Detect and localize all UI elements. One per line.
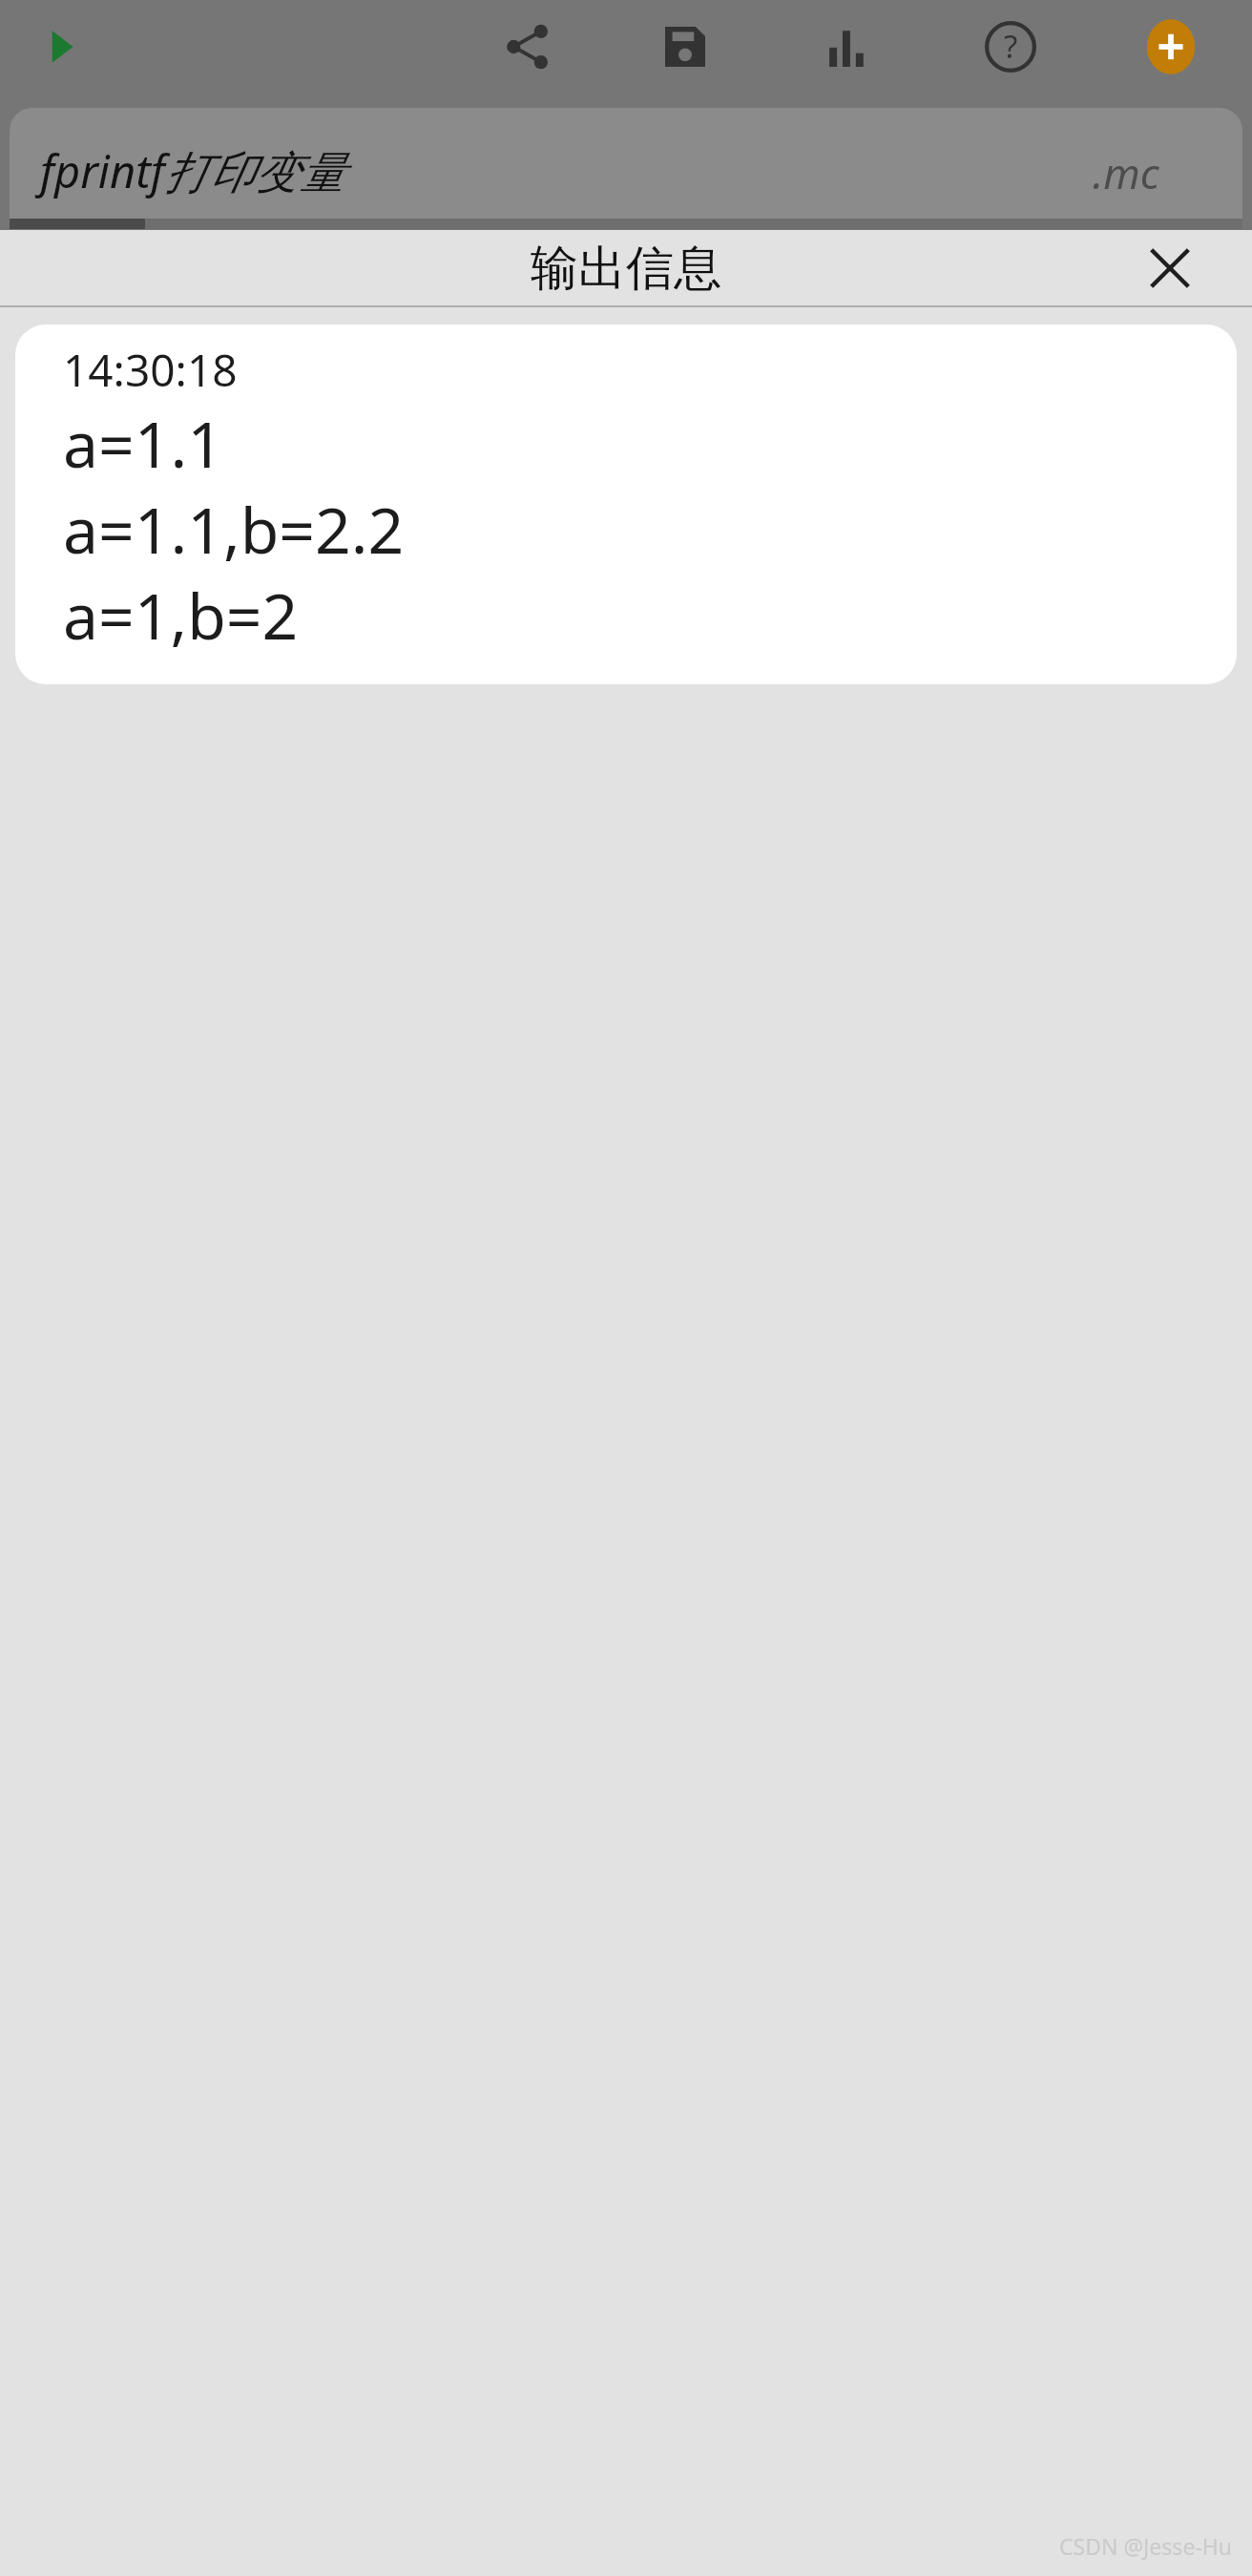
staticText: fprintf打印变量 xyxy=(40,140,344,201)
staticText: 输出信息 xyxy=(531,239,721,299)
staticText: .mc xyxy=(1093,144,1159,201)
button[interactable]: Close xyxy=(1136,234,1204,303)
button[interactable]: Add xyxy=(1133,9,1209,85)
button[interactable]: Run xyxy=(25,10,97,83)
staticText: CSDN @Jesse-Hu xyxy=(1059,2531,1233,2561)
staticText: a=1.1,b=2.2 xyxy=(63,486,405,572)
button[interactable]: fprintf打印变量 xyxy=(10,108,1242,220)
staticText: a=1,b=2 xyxy=(63,572,299,658)
staticText: 14:30:18 xyxy=(63,340,238,400)
button[interactable]: Save xyxy=(647,9,723,85)
staticText: ? xyxy=(1004,25,1018,68)
button[interactable]: Statistics xyxy=(809,9,886,85)
button[interactable]: Share xyxy=(490,9,566,85)
staticText: a=1.1 xyxy=(63,400,223,486)
button[interactable]: Help xyxy=(972,9,1049,85)
